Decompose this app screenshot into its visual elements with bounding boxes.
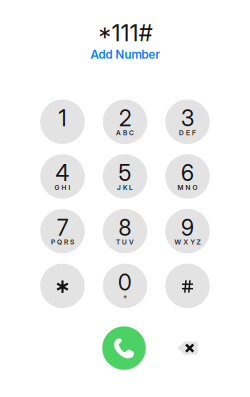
staticText: + (123, 293, 127, 301)
staticText: G H I (54, 183, 70, 191)
staticText: 9 (181, 214, 194, 241)
staticText: P Q R S (51, 238, 74, 246)
button[interactable]: 4 (31, 154, 94, 199)
staticText: J K L (117, 183, 133, 191)
button[interactable]: Delete (156, 327, 219, 370)
staticText: 8 (118, 214, 131, 241)
staticText: 5 (118, 160, 131, 186)
staticText: *111# (97, 19, 152, 47)
button[interactable]: 2 (94, 99, 156, 144)
staticText: Add Number (90, 47, 159, 62)
staticText: 6 (181, 160, 194, 186)
button[interactable]: 5 (94, 154, 156, 199)
button[interactable]: Star (31, 264, 94, 308)
staticText: 2 (119, 105, 131, 132)
button[interactable]: 0 (94, 264, 156, 308)
staticText: 3 (181, 105, 194, 132)
staticText: 1 (58, 105, 66, 132)
staticText: 7 (57, 214, 68, 241)
staticText: 4 (55, 160, 69, 186)
button[interactable]: 1 (31, 99, 94, 144)
button[interactable]: 3 (156, 99, 219, 144)
staticText: D E F (179, 129, 196, 137)
button[interactable]: 8 (94, 209, 156, 253)
staticText: W X Y Z (174, 238, 200, 246)
button[interactable]: Pound (156, 264, 219, 308)
button[interactable]: 6 (156, 154, 219, 199)
button[interactable]: 9 (156, 209, 219, 253)
staticText: A B C (116, 129, 134, 137)
staticText: M N O (177, 183, 197, 191)
button[interactable]: Call (94, 327, 156, 370)
staticText: T U V (116, 238, 134, 246)
button[interactable]: 7 (31, 209, 94, 253)
staticText: 0 (118, 269, 132, 296)
button[interactable]: Add Number (90, 49, 159, 60)
